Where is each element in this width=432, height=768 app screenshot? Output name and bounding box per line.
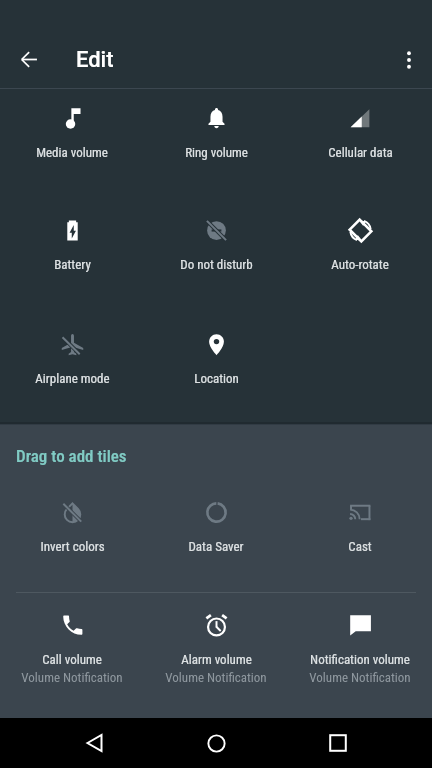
- staticText: Volume Notification: [165, 670, 267, 685]
- staticText: Auto-rotate: [331, 257, 389, 272]
- staticText: Alarm volume: [181, 652, 252, 667]
- button[interactable]: Ring volume: [144, 89, 288, 202]
- button[interactable]: Do not disturb: [144, 201, 288, 314]
- button[interactable]: Notification volume: [288, 596, 432, 709]
- button[interactable]: Location: [144, 315, 288, 428]
- staticText: Invert colors: [40, 539, 105, 554]
- staticText: Edit: [76, 47, 114, 73]
- staticText: Do not disturb: [180, 257, 253, 272]
- staticText: Cast: [348, 539, 372, 554]
- button[interactable]: Alarm volume: [144, 596, 288, 709]
- button[interactable]: Navigate up: [0, 25, 58, 88]
- button[interactable]: Invert colors: [0, 483, 144, 596]
- button[interactable]: Recent apps: [314, 719, 362, 767]
- staticText: Data Saver: [188, 539, 244, 554]
- button[interactable]: Auto-rotate: [288, 201, 432, 314]
- button[interactable]: Cast: [288, 483, 432, 596]
- staticText: Ring volume: [185, 145, 248, 160]
- button[interactable]: Airplane mode: [0, 315, 144, 428]
- button[interactable]: Home: [192, 719, 240, 767]
- button[interactable]: Media volume: [0, 89, 144, 202]
- button[interactable]: Back: [71, 719, 119, 767]
- staticText: Drag to add tiles: [16, 446, 127, 466]
- staticText: Cellular data: [328, 145, 393, 160]
- staticText: Notification volume: [310, 652, 410, 667]
- staticText: Battery: [54, 257, 91, 272]
- button[interactable]: Battery: [0, 201, 144, 314]
- button[interactable]: More options: [386, 25, 432, 88]
- button[interactable]: Data Saver: [144, 483, 288, 596]
- staticText: Location: [194, 371, 239, 386]
- staticText: Media volume: [36, 145, 108, 160]
- staticText: Volume Notification: [309, 670, 411, 685]
- button[interactable]: Cellular data: [288, 89, 432, 202]
- staticText: Call volume: [42, 652, 102, 667]
- staticText: Volume Notification: [21, 670, 123, 685]
- button[interactable]: Call volume: [0, 596, 144, 709]
- staticText: Airplane mode: [35, 371, 110, 386]
